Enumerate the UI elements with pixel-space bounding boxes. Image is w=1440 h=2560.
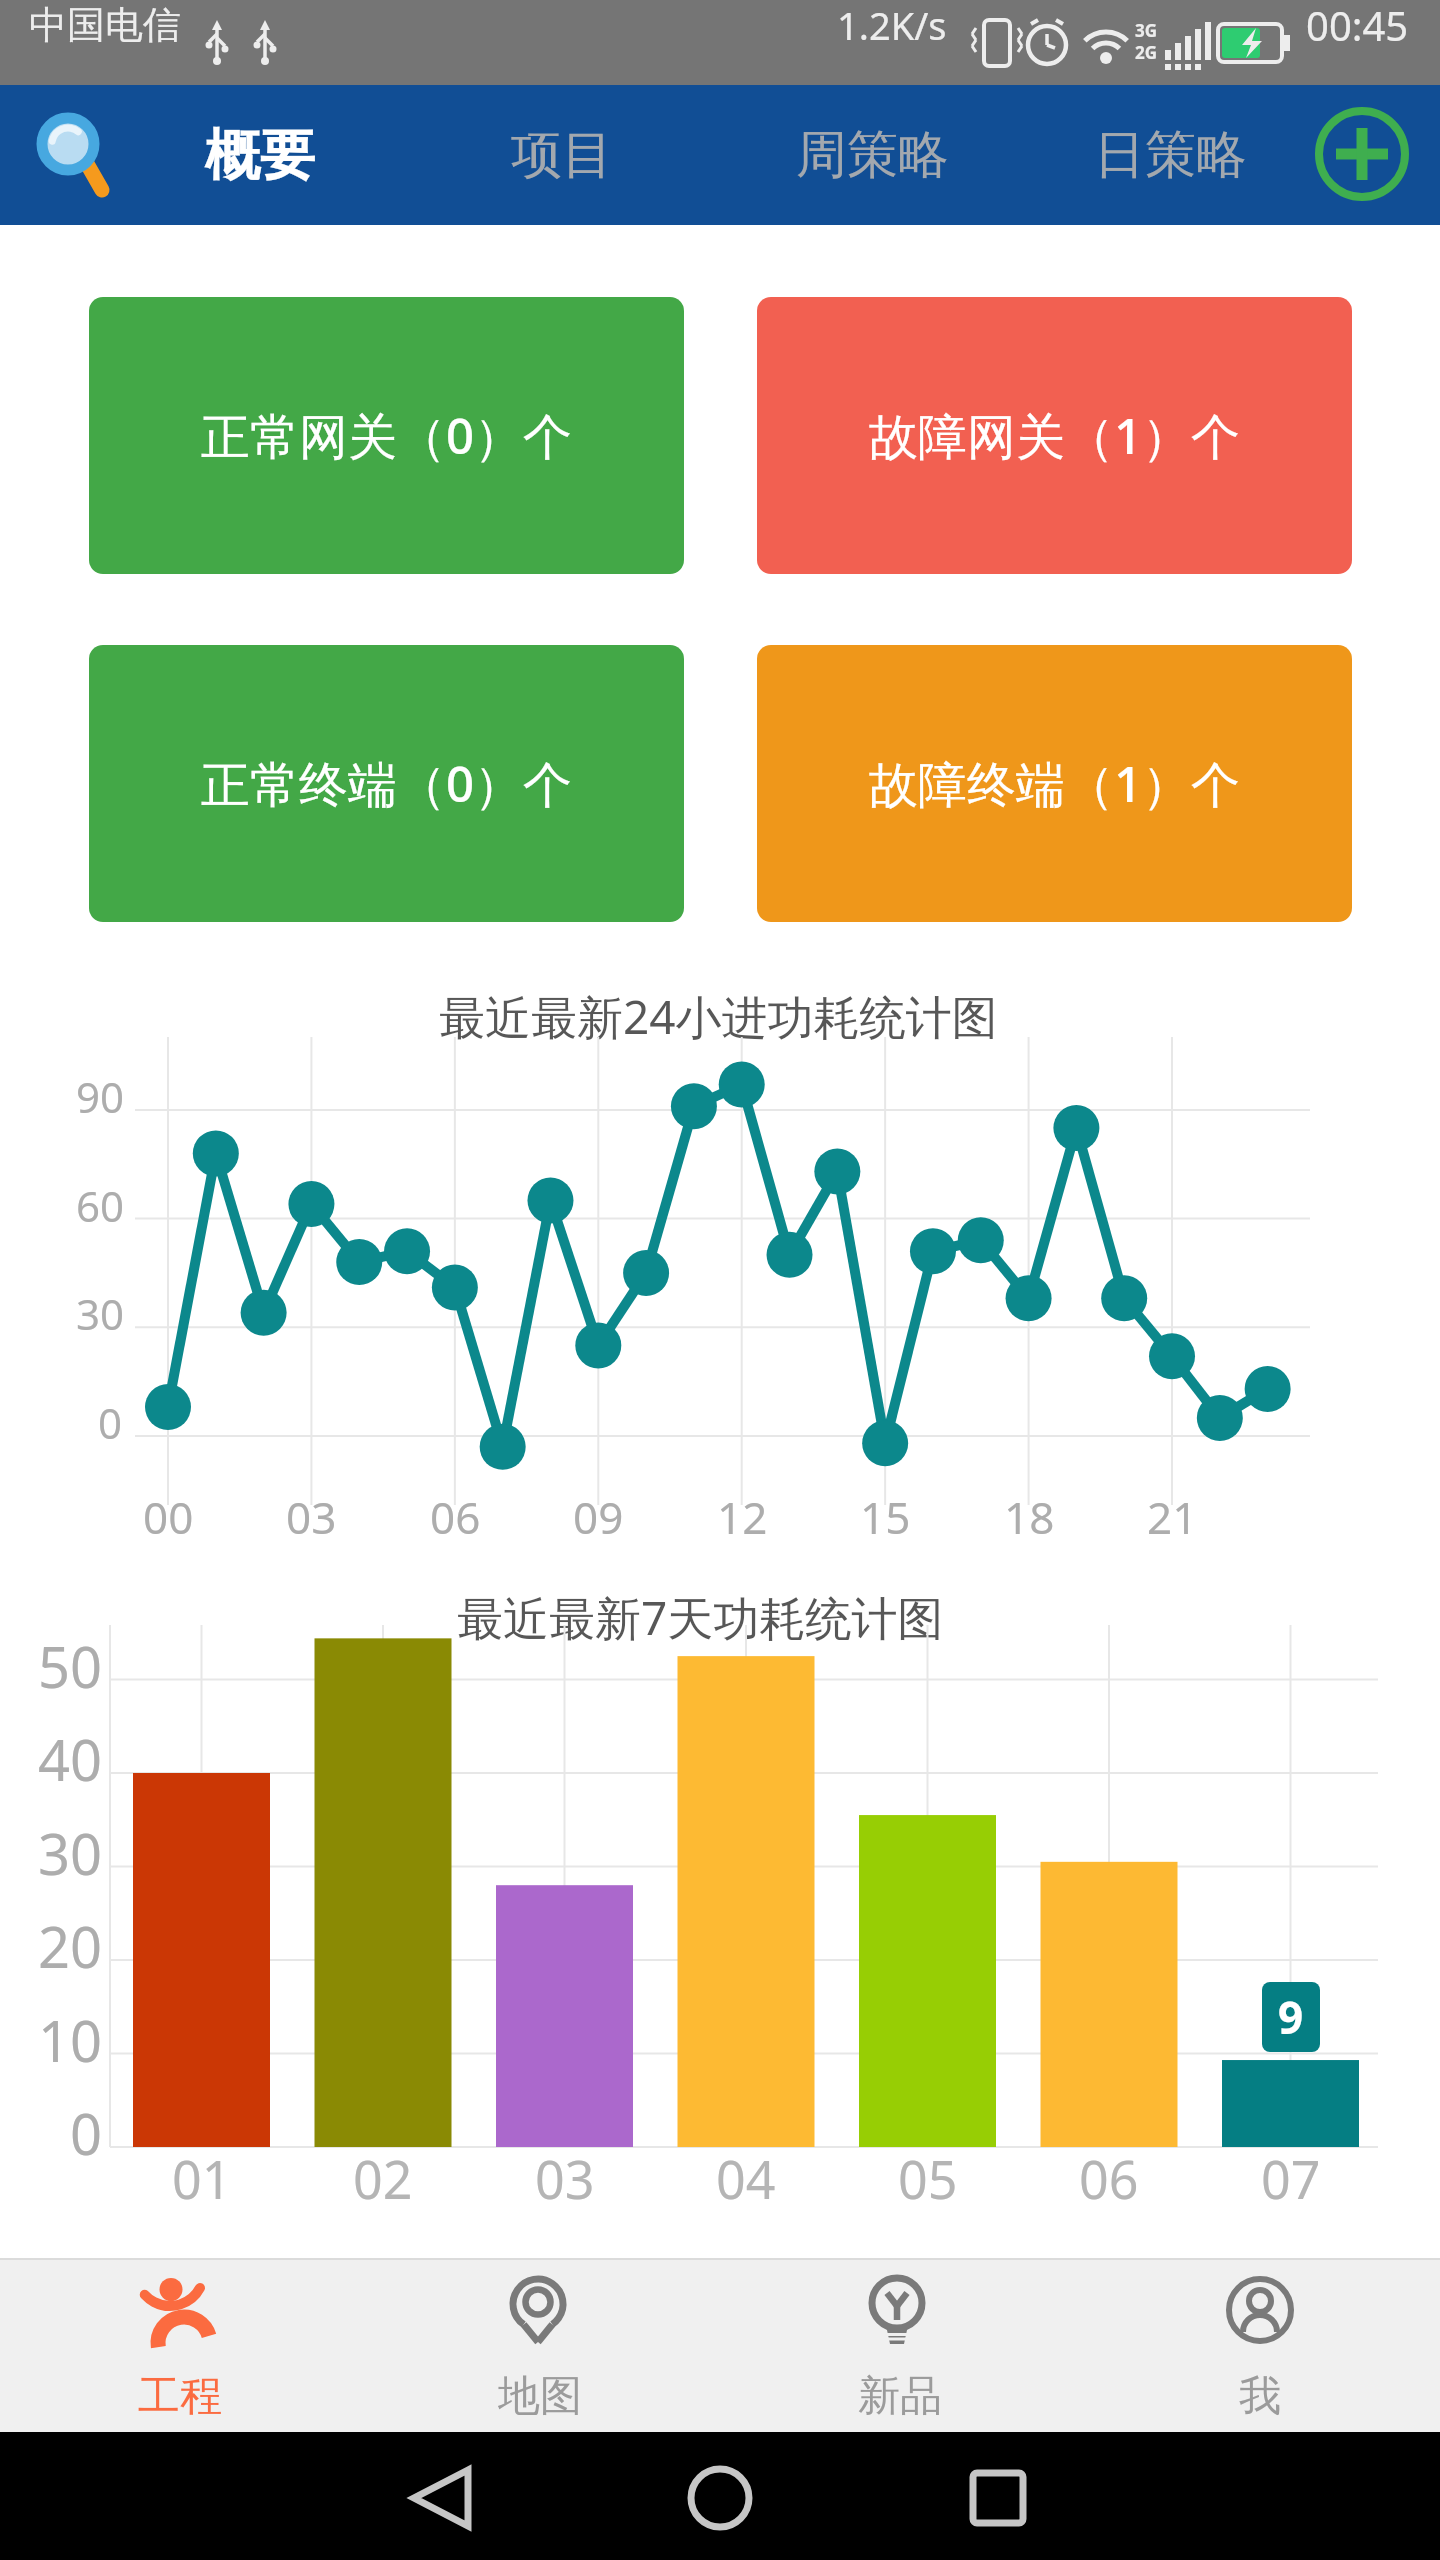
staticText: 最近最新7天功耗统计图 [457, 1586, 944, 1649]
staticText: 40 [38, 1721, 103, 1797]
staticText: 日策略 [1094, 123, 1247, 187]
staticText: 0 [70, 2095, 103, 2171]
staticText: 09 [573, 1487, 624, 1547]
staticText: 我 [1239, 2370, 1281, 2420]
staticText: 2G [1135, 41, 1158, 64]
staticText: 中国电信 [29, 1, 181, 49]
button[interactable]: 故障网关（1）个 [757, 297, 1352, 574]
button[interactable] [660, 2432, 780, 2560]
staticText: 项目 [511, 123, 613, 187]
button[interactable]: 新品 [720, 2258, 1080, 2432]
staticText: 02 [353, 2143, 413, 2214]
button[interactable] [20, 95, 140, 215]
staticText: 01 [172, 2143, 232, 2214]
staticText: 10 [38, 2002, 103, 2078]
staticText: 正常终端（0）个 [201, 750, 573, 817]
staticText: 周策略 [796, 123, 949, 187]
staticText: 20 [38, 1908, 103, 1984]
staticText: 12 [717, 1487, 768, 1547]
staticText: 正常网关（0）个 [201, 402, 573, 469]
staticText: 18 [1004, 1487, 1055, 1547]
button[interactable] [1308, 101, 1416, 209]
button[interactable]: 地图 [360, 2258, 720, 2432]
staticText: 06 [1079, 2143, 1139, 2214]
staticText: 05 [898, 2143, 958, 2214]
button[interactable]: 日策略 [1060, 85, 1280, 225]
staticText: 90 [76, 1068, 125, 1125]
staticText: 3G [1135, 19, 1158, 42]
staticText: 15 [860, 1487, 911, 1547]
staticText: 07 [1261, 2143, 1321, 2214]
staticText: 21 [1147, 1487, 1198, 1547]
button[interactable]: 工程 [0, 2258, 360, 2432]
button[interactable]: 周策略 [762, 85, 982, 225]
staticText: 地图 [498, 2370, 582, 2420]
staticText: 60 [76, 1177, 125, 1234]
staticText: 新品 [858, 2370, 942, 2420]
staticText: 工程 [138, 2370, 222, 2420]
staticText: 故障终端（1）个 [869, 750, 1241, 817]
staticText: 03 [286, 1487, 337, 1547]
staticText: 30 [76, 1285, 125, 1342]
button[interactable]: 概要 [150, 85, 370, 225]
button[interactable]: 正常终端（0）个 [89, 645, 684, 922]
staticText: 00 [143, 1487, 194, 1547]
staticText: 0 [98, 1394, 123, 1451]
staticText: 1.2K/s [837, 0, 947, 51]
staticText: 00:45 [1306, 0, 1409, 52]
button[interactable] [938, 2432, 1058, 2560]
button[interactable]: 故障终端（1）个 [757, 645, 1352, 922]
staticText: 30 [38, 1815, 103, 1891]
staticText: 06 [430, 1487, 481, 1547]
staticText: 9 [1278, 1987, 1304, 2047]
staticText: 50 [38, 1628, 103, 1704]
button[interactable] [380, 2432, 500, 2560]
staticText: 03 [535, 2143, 595, 2214]
button[interactable]: 我 [1080, 2258, 1440, 2432]
staticText: 04 [716, 2143, 776, 2214]
staticText: 故障网关（1）个 [869, 402, 1241, 469]
button[interactable]: 正常网关（0）个 [89, 297, 684, 574]
staticText: 最近最新24小进功耗统计图 [439, 985, 998, 1048]
button[interactable]: 项目 [452, 85, 672, 225]
staticText: 概要 [205, 121, 315, 190]
